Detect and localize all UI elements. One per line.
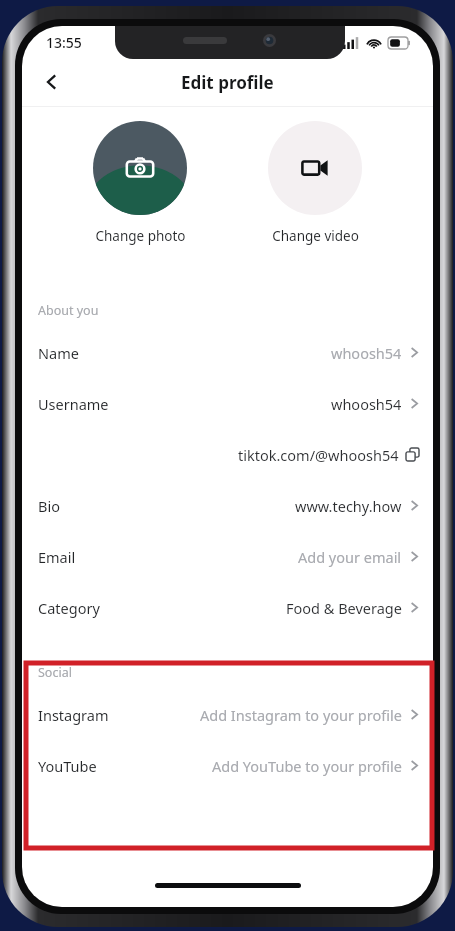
staticText: whoosh54 [331,343,402,363]
button[interactable]: Name [22,327,433,378]
button[interactable]: Username [22,378,433,429]
staticText: www.techy.how [295,496,402,516]
button[interactable]: Email [22,531,433,582]
other: Copy link [406,448,419,461]
staticText: Edit profile [181,71,274,94]
button[interactable]: Change video [268,121,362,245]
staticText: About you [38,302,99,319]
button[interactable]: Bio [22,480,433,531]
staticText: Username [38,394,109,414]
button[interactable]: Instagram [22,689,433,740]
button[interactable]: Back [30,60,74,104]
button[interactable]: YouTube [22,740,433,791]
staticText: Food & Beverage [286,598,402,618]
staticText: YouTube [38,756,97,776]
button[interactable]: Category [22,582,433,633]
staticText: Add your email [298,547,402,567]
staticText: Bio [38,496,60,516]
staticText: Name [38,343,79,363]
staticText: Change photo [95,227,186,245]
staticText: Social [38,664,72,681]
staticText: 13:55 [46,33,82,52]
staticText: Change video [272,227,359,245]
button[interactable]: Change photo [93,121,187,245]
staticText: Email [38,547,76,567]
staticText: Add YouTube to your profile [212,756,402,776]
staticText: Add Instagram to your profile [200,705,402,725]
staticText: whoosh54 [331,394,402,414]
staticText: tiktok.com/@whoosh54 [238,445,399,465]
staticText: Category [38,598,100,618]
button[interactable]: tiktok.com/@whoosh54 [22,429,433,480]
staticText: Instagram [38,705,109,725]
